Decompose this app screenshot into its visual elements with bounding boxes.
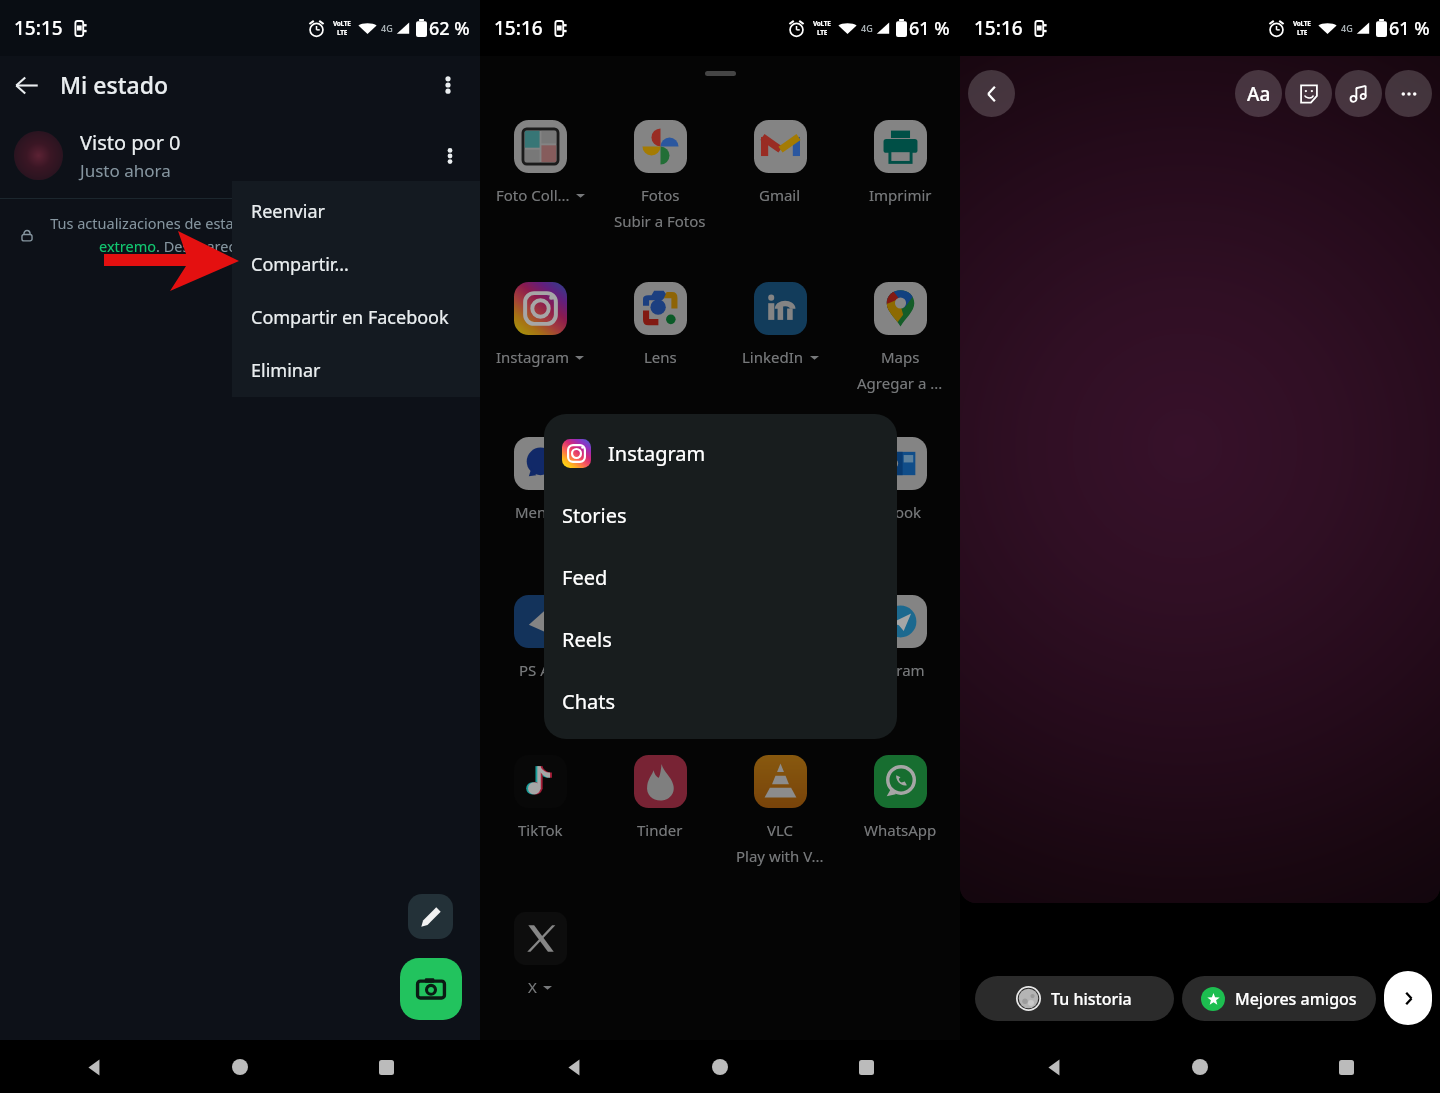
- staticText: Aa: [1247, 81, 1271, 107]
- button[interactable]: Back: [1032, 1045, 1076, 1089]
- staticText: Mejores amigos: [1235, 988, 1357, 1010]
- button[interactable]: Next: [1384, 971, 1432, 1025]
- button[interactable]: Lens: [600, 282, 720, 367]
- button[interactable]: Tu historia: [975, 976, 1174, 1021]
- staticText: Tu historia: [1051, 988, 1132, 1010]
- staticText: 61 %: [909, 16, 950, 41]
- staticText: Justo ahora: [80, 159, 171, 182]
- staticText: ...look: [879, 502, 922, 522]
- button[interactable]: ...gram: [840, 595, 960, 680]
- staticText: 62 %: [429, 16, 470, 41]
- button[interactable]: Stickers: [1285, 70, 1332, 117]
- button[interactable]: Tinder: [600, 755, 720, 840]
- button[interactable]: Compartir en Facebook: [232, 291, 480, 344]
- staticText: PS A...: [519, 660, 562, 680]
- button[interactable]: Reels: [544, 608, 897, 670]
- staticText: LinkedIn: [742, 347, 804, 367]
- button[interactable]: VLC: [720, 755, 840, 866]
- button[interactable]: PS A...: [480, 595, 600, 680]
- staticText: Play with V...: [736, 846, 824, 866]
- button[interactable]: ...look: [840, 437, 960, 522]
- button[interactable]: Mens...: [480, 437, 600, 522]
- staticText: Compartir en Facebook: [251, 305, 449, 330]
- staticText: Compartir...: [251, 252, 349, 277]
- button[interactable]: TikTok: [480, 755, 600, 840]
- staticText: WhatsApp: [864, 820, 937, 840]
- button[interactable]: Foto Coll...: [480, 120, 600, 205]
- button[interactable]: Instagram: [544, 432, 897, 474]
- staticText: Maps: [881, 347, 920, 367]
- button[interactable]: Visto por 0: [0, 113, 480, 198]
- staticText: 15:16: [494, 15, 543, 41]
- button[interactable]: Recents: [844, 1045, 888, 1089]
- button[interactable]: Eliminar: [232, 344, 480, 397]
- button[interactable]: Home: [698, 1045, 742, 1089]
- staticText: 4G: [1341, 22, 1353, 34]
- button[interactable]: Home: [218, 1045, 262, 1089]
- staticText: Feed: [562, 564, 608, 591]
- button[interactable]: Instagram: [480, 282, 600, 367]
- staticText: VoLTE: [813, 19, 831, 28]
- button[interactable]: Text: [1235, 70, 1282, 117]
- staticText: Subir a Fotos: [614, 211, 706, 231]
- staticText: Visto por 0: [80, 129, 181, 156]
- button[interactable]: Mejores amigos: [1182, 976, 1376, 1021]
- button[interactable]: Reenviar: [232, 185, 480, 238]
- staticText: VoLTE: [333, 19, 351, 28]
- button[interactable]: Gmail: [720, 120, 840, 205]
- staticText: LTE: [817, 28, 827, 37]
- staticText: Chats: [562, 688, 616, 715]
- staticText: Tus actualizaciones de estado están cifr…: [50, 213, 371, 233]
- staticText: 15:16: [974, 15, 1023, 41]
- button[interactable]: Feed: [544, 546, 897, 608]
- staticText: Gmail: [759, 185, 801, 205]
- staticText: Stories: [562, 502, 627, 529]
- button[interactable]: X: [480, 912, 600, 997]
- button[interactable]: Back: [72, 1045, 116, 1089]
- staticText: Fotos: [641, 185, 680, 205]
- button[interactable]: Compartir...: [232, 238, 480, 291]
- staticText: 61 %: [1389, 16, 1430, 41]
- staticText: LTE: [337, 28, 347, 37]
- staticText: Tinder: [637, 820, 683, 840]
- button[interactable]: Imprimir: [840, 120, 960, 205]
- staticText: 4G: [381, 22, 393, 34]
- button[interactable]: Chats: [544, 670, 897, 732]
- staticText: Instagram: [608, 440, 706, 467]
- staticText: Agregar a ...: [857, 373, 943, 393]
- staticText: Mi estado: [60, 69, 168, 100]
- staticText: LTE: [1297, 28, 1307, 37]
- staticText: Instagram: [496, 347, 569, 367]
- button[interactable]: Recents: [1324, 1045, 1368, 1089]
- staticText: 15:15: [14, 15, 63, 41]
- button[interactable]: Edit status: [408, 894, 453, 939]
- button[interactable]: More options: [428, 65, 468, 105]
- staticText: Lens: [644, 347, 677, 367]
- button[interactable]: LinkedIn: [720, 282, 840, 367]
- button[interactable]: Fotos: [600, 120, 720, 231]
- button[interactable]: Home: [1178, 1045, 1222, 1089]
- button[interactable]: Stories: [544, 484, 897, 546]
- button[interactable]: Back: [968, 70, 1015, 117]
- staticText: ...gram: [875, 660, 925, 680]
- button[interactable]: Back: [552, 1045, 596, 1089]
- staticText: 4G: [861, 22, 873, 34]
- staticText: Reenviar: [251, 199, 325, 224]
- button[interactable]: Music: [1335, 70, 1382, 117]
- button[interactable]: Back: [6, 65, 46, 105]
- staticText: Imprimir: [869, 185, 932, 205]
- button[interactable]: More: [1385, 70, 1432, 117]
- button[interactable]: WhatsApp: [840, 755, 960, 840]
- staticText: extremo: [99, 236, 156, 256]
- button[interactable]: Camera: [400, 958, 462, 1020]
- staticText: Mens...: [515, 502, 566, 522]
- staticText: . Desaparecerán en 24 h: [156, 236, 321, 256]
- button[interactable]: Options: [432, 138, 468, 174]
- staticText: X: [528, 977, 537, 997]
- button[interactable]: Recents: [364, 1045, 408, 1089]
- staticText: Foto Coll...: [496, 185, 570, 205]
- staticText: Reels: [562, 626, 612, 653]
- button[interactable]: Maps: [840, 282, 960, 393]
- staticText: Eliminar: [251, 358, 321, 383]
- staticText: TikTok: [518, 820, 563, 840]
